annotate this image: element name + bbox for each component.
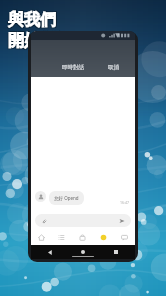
staticText: 開始對話	[9, 32, 73, 52]
button[interactable]: Messages	[51, 230, 72, 245]
staticText: 開始對話	[8, 31, 72, 51]
staticText: 開始對話	[7, 32, 71, 52]
staticText: 16:47	[120, 200, 129, 205]
staticText: 開始對話	[9, 30, 73, 50]
button[interactable]: 您好 Opend	[54, 195, 79, 201]
button[interactable]: Home	[78, 247, 88, 257]
button[interactable]: Highlighted	[93, 230, 114, 245]
button[interactable]: Home	[31, 230, 51, 245]
button[interactable]: Chat	[114, 230, 135, 245]
staticText: 與我們	[8, 10, 56, 30]
button[interactable]: 即時對話	[31, 40, 135, 77]
button[interactable]: 即時對話	[60, 64, 86, 71]
button[interactable]: Attach file	[40, 217, 48, 225]
button[interactable]: Shop	[72, 230, 93, 245]
staticText: 即時對話	[62, 64, 84, 71]
staticText: 取消	[108, 64, 119, 71]
button[interactable]: 取消	[106, 64, 121, 71]
staticText: 與我們	[9, 11, 57, 31]
staticText: 與我們	[7, 11, 55, 31]
button[interactable]: Attach file	[35, 214, 131, 227]
button[interactable]: Send message	[118, 217, 126, 225]
staticText: 與我們	[9, 9, 57, 29]
staticText: 您好 Opend	[54, 195, 79, 201]
button[interactable]: Recent apps	[111, 247, 121, 257]
button[interactable]: Back	[45, 247, 55, 257]
